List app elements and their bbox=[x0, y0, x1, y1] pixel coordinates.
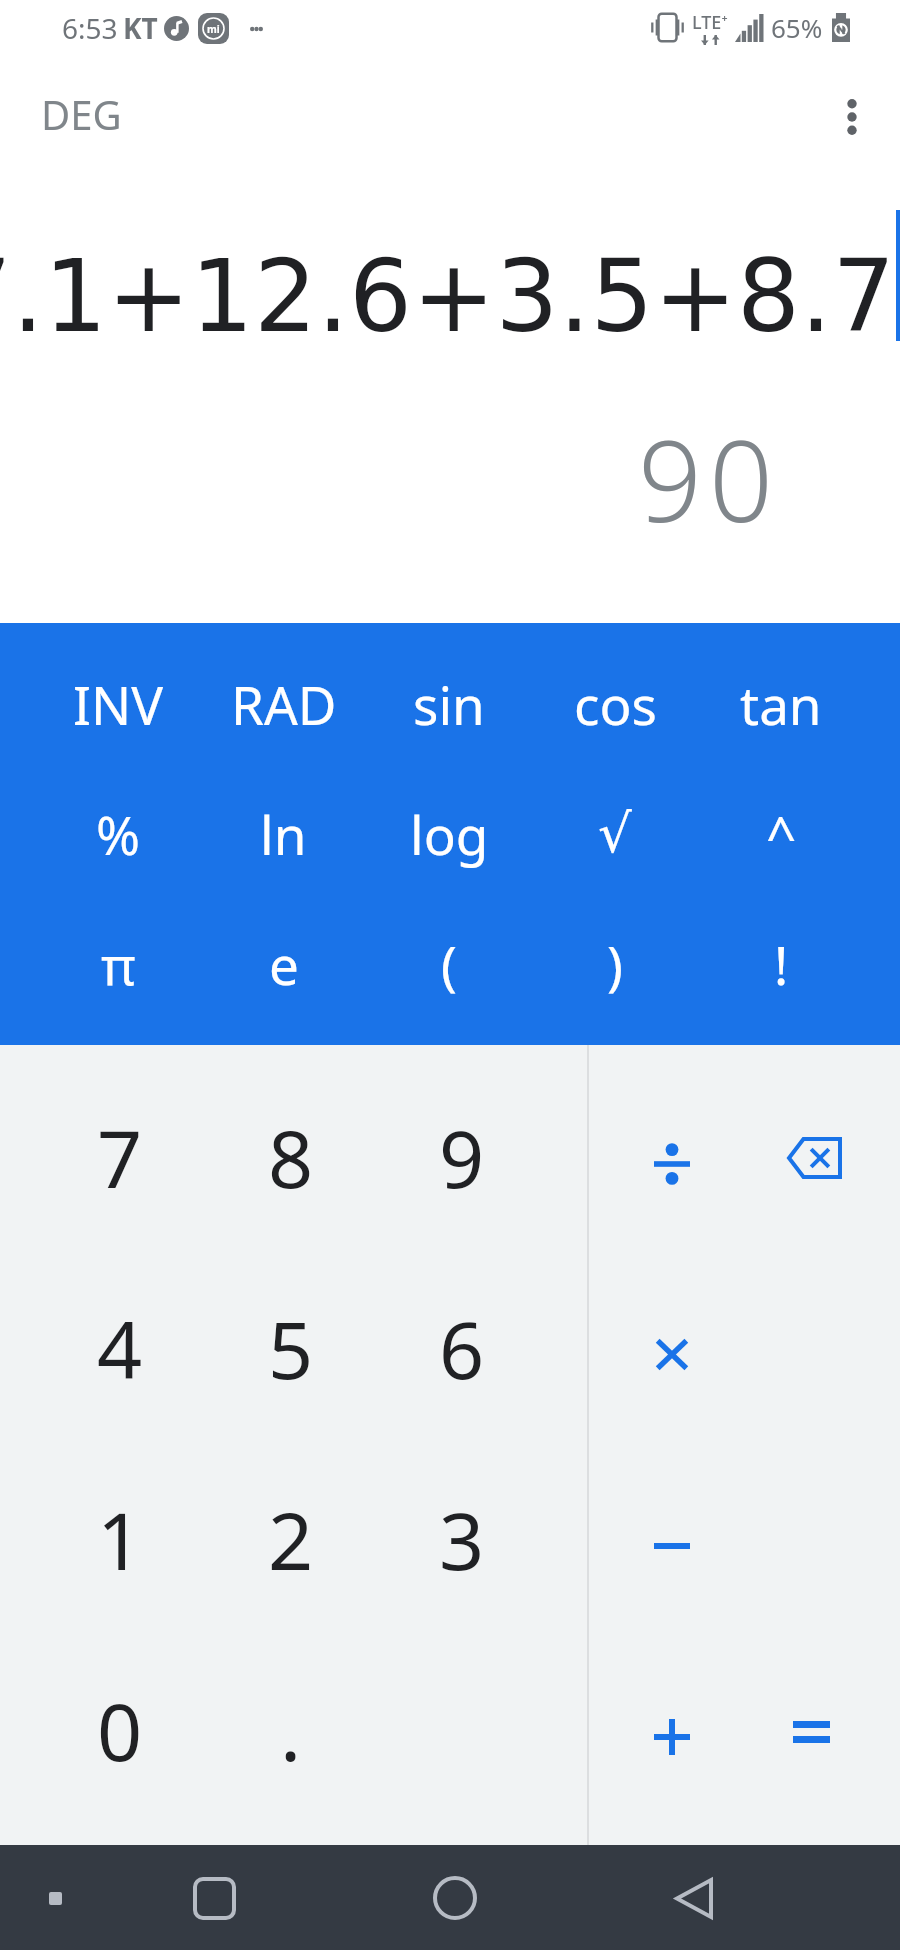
button[interactable]: 6 bbox=[376, 1253, 547, 1444]
button[interactable]: % bbox=[36, 769, 201, 899]
staticText: DEG bbox=[41, 87, 122, 141]
staticText: sin bbox=[413, 668, 485, 740]
staticText: π bbox=[101, 928, 136, 1000]
button[interactable]: Home bbox=[424, 1867, 486, 1929]
staticText: 5 bbox=[268, 1295, 314, 1403]
button[interactable]: 4 bbox=[34, 1253, 205, 1444]
button[interactable]: log bbox=[366, 769, 532, 899]
staticText: ln bbox=[260, 798, 307, 870]
other: Backspace bbox=[788, 1143, 843, 1185]
staticText: RAD bbox=[231, 668, 337, 740]
button[interactable]: Recents bbox=[183, 1867, 245, 1929]
button[interactable]: cos bbox=[532, 639, 698, 769]
button[interactable]: ) bbox=[532, 899, 698, 1029]
button[interactable]: Equals bbox=[743, 1641, 887, 1832]
button[interactable]: ln bbox=[201, 769, 366, 899]
staticText: 8 bbox=[268, 1104, 314, 1212]
button[interactable]: DEG bbox=[8, 69, 155, 159]
staticText: ! bbox=[774, 928, 789, 1000]
staticText: 3 bbox=[439, 1486, 485, 1594]
button[interactable]: 7 bbox=[34, 1062, 205, 1253]
staticText: 6:53 bbox=[62, 9, 118, 47]
staticText: 90 bbox=[638, 402, 780, 555]
staticText: log bbox=[410, 798, 489, 870]
button[interactable]: Divide bbox=[600, 1068, 743, 1259]
button[interactable]: ^ bbox=[698, 769, 864, 899]
button[interactable]: tan bbox=[698, 639, 864, 769]
staticText: KT bbox=[123, 9, 158, 47]
button[interactable]: ! bbox=[698, 899, 864, 1029]
staticText: 1 bbox=[97, 1486, 143, 1594]
staticText: % bbox=[96, 798, 141, 870]
staticText: ) bbox=[607, 928, 623, 1000]
staticText: 9 bbox=[439, 1104, 485, 1212]
button[interactable]: 8 bbox=[205, 1062, 376, 1253]
button[interactable]: e bbox=[201, 899, 366, 1029]
button[interactable]: 0 bbox=[34, 1635, 205, 1826]
button[interactable]: INV bbox=[36, 639, 201, 769]
staticText: cos bbox=[574, 668, 657, 740]
button[interactable]: . bbox=[205, 1635, 376, 1826]
button[interactable]: ( bbox=[366, 899, 532, 1029]
button[interactable]: √ bbox=[532, 769, 698, 899]
button[interactable]: RAD bbox=[201, 639, 366, 769]
button[interactable]: Multiply bbox=[600, 1259, 743, 1450]
button[interactable]: Hide keyboard bbox=[28, 1871, 82, 1925]
button[interactable]: More options bbox=[821, 86, 883, 148]
button[interactable]: 5 bbox=[205, 1253, 376, 1444]
button[interactable]: 1 bbox=[34, 1444, 205, 1635]
staticText: tan bbox=[740, 668, 822, 740]
staticText: 6 bbox=[439, 1295, 485, 1403]
button[interactable]: sin bbox=[366, 639, 532, 769]
staticText: 4 bbox=[97, 1295, 143, 1403]
staticText: 0 bbox=[97, 1677, 143, 1785]
staticText: . bbox=[280, 1677, 302, 1785]
button[interactable]: bksp bbox=[743, 1068, 887, 1259]
button[interactable]: Subtract bbox=[600, 1450, 743, 1641]
button[interactable]: 9 bbox=[376, 1062, 547, 1253]
staticText: 65% bbox=[771, 10, 823, 45]
staticText: LTE⁺ bbox=[692, 10, 728, 35]
staticText: 7 bbox=[97, 1104, 143, 1212]
staticText: ^ bbox=[766, 798, 797, 870]
staticText: mi bbox=[207, 22, 220, 36]
button[interactable]: Back bbox=[663, 1867, 725, 1929]
staticText: e bbox=[269, 928, 299, 1000]
staticText: √ bbox=[598, 803, 632, 865]
button[interactable]: 2 bbox=[205, 1444, 376, 1635]
staticText: 7.1+12.6+3.5+8.7 bbox=[0, 239, 896, 354]
button[interactable]: 3 bbox=[376, 1444, 547, 1635]
staticText: 2 bbox=[268, 1486, 314, 1594]
staticText: ( bbox=[441, 928, 457, 1000]
button[interactable]: Add bbox=[600, 1641, 743, 1832]
button[interactable]: π bbox=[36, 899, 201, 1029]
staticText: INV bbox=[73, 668, 164, 740]
